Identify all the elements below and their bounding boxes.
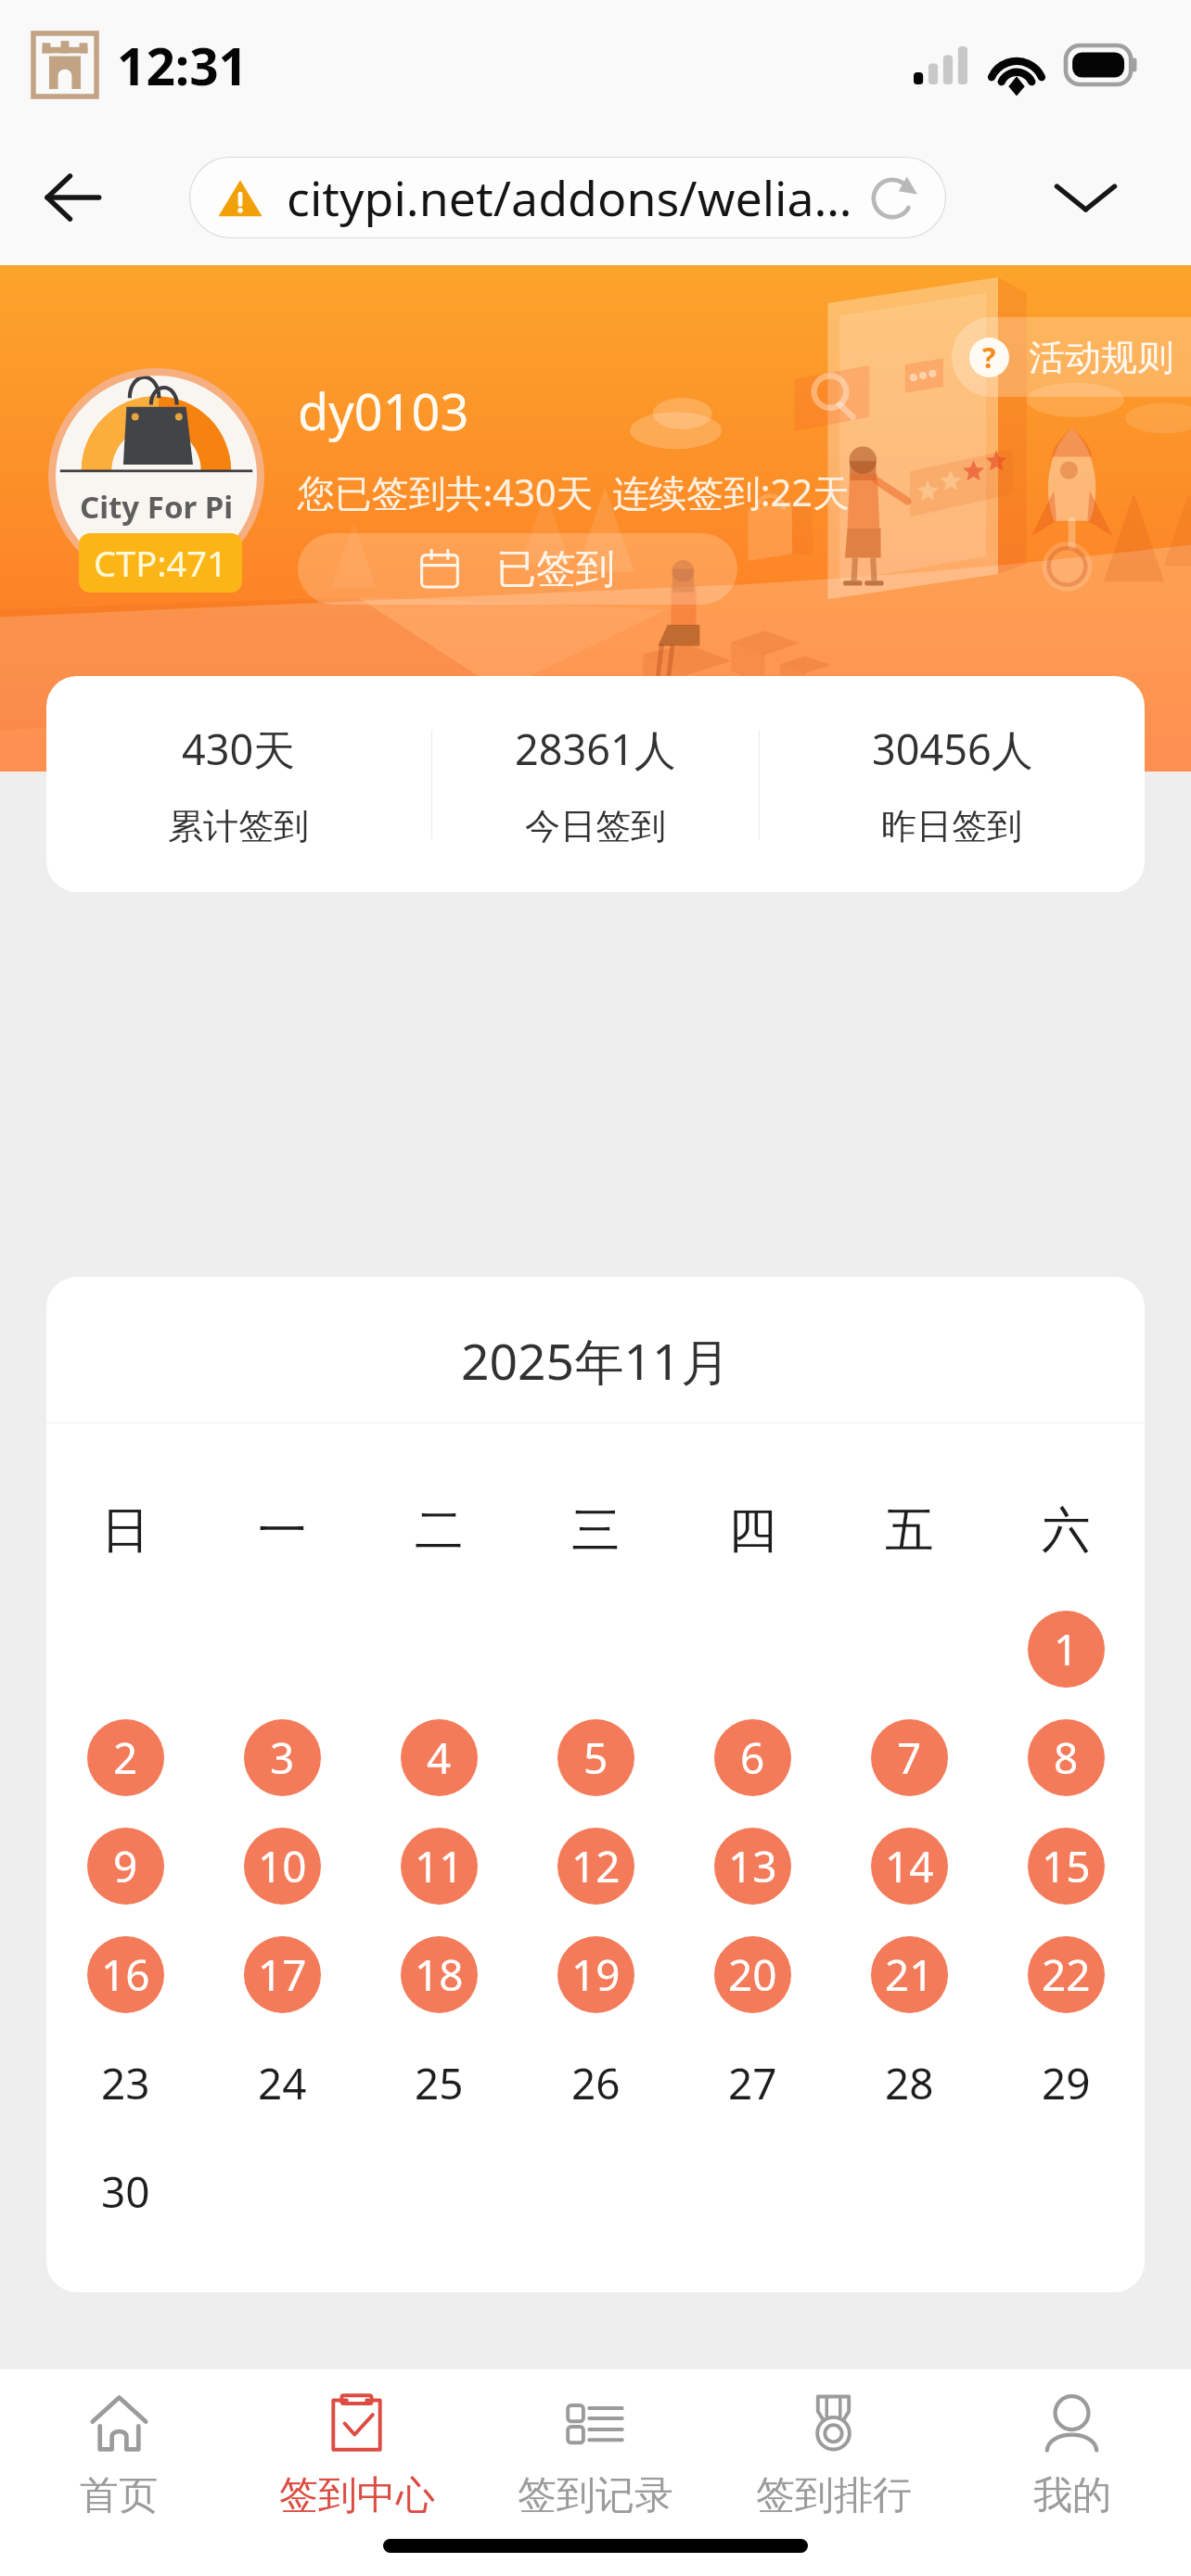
staticText: 21 (885, 1945, 934, 2004)
button[interactable]: 20 (714, 1936, 791, 2013)
button[interactable]: 12 (557, 1828, 634, 1905)
staticText: 29 (1042, 2054, 1091, 2112)
staticText: 25 (415, 2054, 464, 2112)
button[interactable]: 签到中心 (237, 2393, 476, 2520)
staticText: 您已签到共:430天 连续签到:22天 (298, 466, 851, 516)
button[interactable]: 29 (1028, 2045, 1105, 2122)
button[interactable]: 16 (87, 1936, 164, 2013)
button[interactable]: 签到记录 (476, 2393, 714, 2520)
staticText: citypi.net/addons/welia… (287, 165, 852, 231)
button[interactable]: 28361人 (432, 721, 759, 848)
button[interactable]: 17 (244, 1936, 321, 2013)
staticText: 11 (415, 1837, 464, 1895)
staticText: 17 (258, 1945, 307, 2004)
button[interactable]: 3 (244, 1719, 321, 1796)
staticText: 14 (885, 1837, 934, 1895)
staticText: 签到排行 (756, 2471, 912, 2520)
button[interactable]: 2 (87, 1719, 164, 1796)
button[interactable]: CTP:471 (79, 533, 242, 593)
staticText: CTP:471 (94, 539, 227, 587)
staticText: 2 (113, 1728, 138, 1787)
staticText: 一 (258, 1499, 307, 1561)
button[interactable]: 15 (1028, 1828, 1105, 1905)
staticText: 7 (897, 1728, 922, 1787)
staticText: 三 (571, 1499, 621, 1561)
staticText: 30456人 (872, 721, 1033, 777)
button[interactable]: 签到排行 (714, 2393, 953, 2520)
staticText: 1 (1054, 1620, 1079, 1678)
button[interactable]: 首页 (0, 2393, 237, 2520)
staticText: 签到记录 (518, 2471, 673, 2520)
button[interactable]: 30 (87, 2153, 164, 2230)
staticText: 15 (1042, 1837, 1091, 1895)
staticText: 10 (258, 1837, 307, 1895)
staticText: 4 (427, 1728, 452, 1787)
button[interactable]: 我的 (953, 2393, 1191, 2520)
button[interactable]: 11 (401, 1828, 478, 1905)
button[interactable]: 26 (557, 2045, 634, 2122)
staticText: 19 (571, 1945, 621, 2004)
button[interactable]: 10 (244, 1828, 321, 1905)
button[interactable]: 23 (87, 2045, 164, 2122)
staticText: 今日签到 (525, 804, 667, 848)
button[interactable]: citypi.net/addons/welia… (189, 157, 946, 238)
button[interactable]: 28 (871, 2045, 948, 2122)
staticText: 18 (415, 1945, 464, 2004)
button[interactable]: 13 (714, 1828, 791, 1905)
button[interactable]: 21 (871, 1936, 948, 2013)
staticText: 27 (728, 2054, 777, 2112)
staticText: 30 (101, 2162, 150, 2221)
staticText: 26 (571, 2054, 621, 2112)
button[interactable]: 24 (244, 2045, 321, 2122)
button[interactable]: 18 (401, 1936, 478, 2013)
staticText: 12 (571, 1837, 621, 1895)
staticText: 28 (885, 2054, 934, 2112)
button[interactable]: Back (11, 136, 134, 259)
button[interactable]: 9 (87, 1828, 164, 1905)
staticText: 28361人 (515, 721, 676, 777)
staticText: dy0103 (298, 376, 469, 445)
staticText: 5 (583, 1728, 608, 1787)
staticText: 3 (270, 1728, 295, 1787)
button[interactable]: ? (952, 317, 1191, 397)
staticText: 签到中心 (279, 2471, 435, 2520)
button[interactable]: Expand (1024, 136, 1146, 259)
staticText: 累计签到 (168, 804, 310, 848)
staticText: 首页 (80, 2471, 158, 2520)
button[interactable]: 27 (714, 2045, 791, 2122)
button[interactable]: 14 (871, 1828, 948, 1905)
staticText: 13 (728, 1837, 777, 1895)
button[interactable]: 19 (557, 1936, 634, 2013)
button[interactable]: 22 (1028, 1936, 1105, 2013)
staticText: 活动规则 (1029, 335, 1173, 380)
staticText: 430天 (182, 721, 296, 777)
button[interactable]: 25 (401, 2045, 478, 2122)
staticText: 四 (728, 1499, 777, 1561)
button[interactable]: 8 (1028, 1719, 1105, 1796)
staticText: 16 (101, 1945, 150, 2004)
staticText: 9 (113, 1837, 138, 1895)
staticText: 6 (740, 1728, 765, 1787)
staticText: 我的 (1033, 2471, 1111, 2520)
button[interactable]: 1 (1028, 1611, 1105, 1688)
staticText: 2025年11月 (461, 1327, 731, 1395)
staticText: ? (982, 338, 996, 376)
button[interactable]: 30456人 (760, 721, 1145, 848)
staticText: 已签到 (496, 544, 616, 594)
button[interactable]: 6 (714, 1719, 791, 1796)
button[interactable]: 7 (871, 1719, 948, 1796)
staticText: 8 (1054, 1728, 1079, 1787)
button[interactable]: 430天 (46, 721, 431, 848)
staticText: 12:31 (117, 31, 249, 100)
staticText: 23 (101, 2054, 150, 2112)
button[interactable]: 已签到 (298, 533, 737, 605)
staticText: City For Pi (80, 486, 234, 528)
staticText: 日 (101, 1499, 150, 1561)
staticText: 24 (258, 2054, 307, 2112)
button[interactable]: 5 (557, 1719, 634, 1796)
button[interactable]: 4 (401, 1719, 478, 1796)
staticText: 六 (1042, 1499, 1091, 1561)
staticText: 22 (1042, 1945, 1091, 2004)
staticText: 二 (415, 1499, 464, 1561)
staticText: 五 (885, 1499, 934, 1561)
